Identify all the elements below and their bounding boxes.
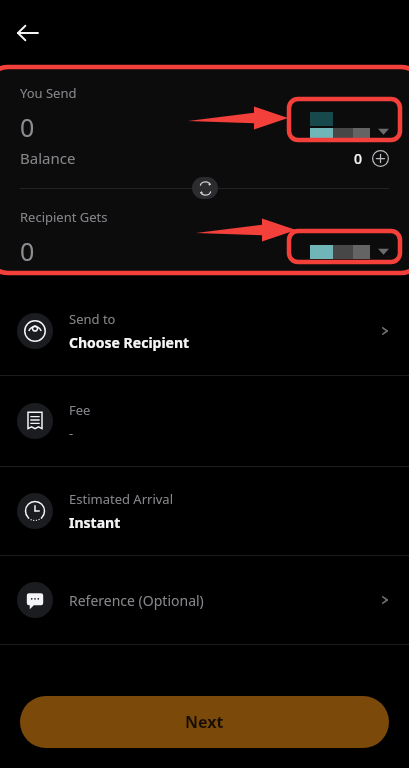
button[interactable]: Reference (Optional) [0,556,409,644]
staticText: Next [185,711,224,733]
staticText: Fee [69,401,91,419]
button[interactable]: Swap currencies [192,177,218,199]
button[interactable]: Select currency [299,112,389,142]
staticText: Recipient Gets [20,208,108,226]
staticText: 0 [354,149,363,168]
staticText: 0 [20,234,35,268]
button[interactable]: Estimated Arrival [0,467,409,555]
staticText: Choose Recipient [69,333,190,352]
button[interactable]: Add funds [372,150,389,167]
button[interactable]: Send to [0,287,409,375]
staticText: Estimated Arrival [69,490,174,508]
staticText: Reference (Optional) [69,591,204,610]
button[interactable]: Select currency [299,244,389,259]
button[interactable]: Fee [0,376,409,466]
button[interactable]: Next [20,696,389,748]
staticText: Balance [20,148,76,168]
button[interactable]: Back [6,11,50,55]
staticText: Send to [69,310,116,328]
staticText: - [69,424,74,442]
staticText: You Send [20,84,77,102]
staticText: 0 [20,110,35,144]
staticText: Instant [69,513,121,532]
